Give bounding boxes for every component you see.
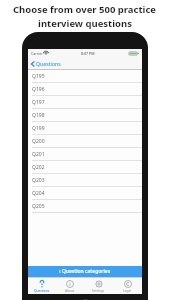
button[interactable]: Q200	[28, 135, 142, 148]
button[interactable]: Questions	[28, 58, 65, 69]
button[interactable]: Q197	[28, 96, 142, 109]
staticText: Q196	[32, 86, 45, 93]
button[interactable]: About	[56, 278, 84, 294]
staticText: Q204	[32, 190, 45, 197]
button[interactable]: Q199	[28, 122, 142, 135]
staticText: ‹ Question categories	[59, 268, 111, 275]
button[interactable]: Q196	[28, 83, 142, 96]
button[interactable]: Legal	[113, 278, 142, 294]
staticText: Questions	[36, 60, 61, 67]
staticText: About	[65, 289, 75, 293]
staticText: Questions	[34, 289, 50, 293]
button[interactable]: Q201	[28, 148, 142, 161]
button[interactable]: Q195	[28, 70, 142, 83]
staticText: Choose from over 500 practice	[13, 3, 156, 16]
staticText: Q200	[32, 138, 45, 145]
button[interactable]: Q203	[28, 174, 142, 187]
staticText: 8:07 PM	[81, 51, 95, 56]
button[interactable]: Questions	[28, 278, 56, 294]
staticText: Q202	[32, 164, 45, 171]
staticText: Q197	[32, 99, 45, 106]
staticText: interview questions	[38, 17, 132, 30]
staticText: Carrier	[31, 51, 43, 56]
button[interactable]: Q205	[28, 200, 142, 213]
staticText: Legal	[123, 289, 132, 293]
staticText: Q195	[32, 73, 45, 80]
button[interactable]: Q202	[28, 161, 142, 174]
staticText: Q198	[32, 112, 45, 119]
button[interactable]: Q198	[28, 109, 142, 122]
staticText: Q205	[32, 203, 45, 210]
staticText: Q199	[32, 125, 45, 132]
button[interactable]: Settings	[84, 278, 113, 294]
staticText: Q203	[32, 177, 45, 184]
button[interactable]: Q204	[28, 187, 142, 200]
staticText: Q201	[32, 151, 45, 158]
button[interactable]: ‹ Question categories	[28, 266, 142, 277]
staticText: Settings	[92, 289, 105, 293]
